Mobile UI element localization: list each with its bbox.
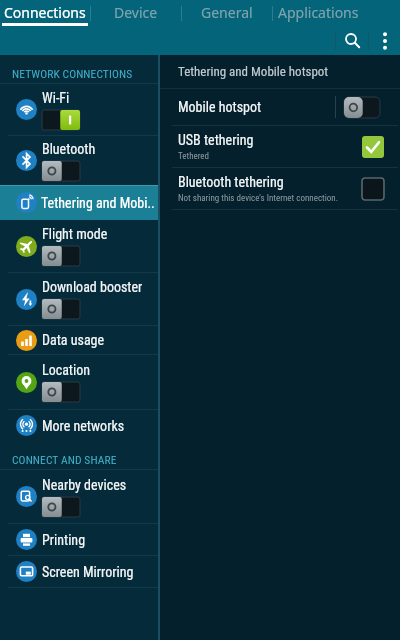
staticText: Screen Mirroring bbox=[42, 564, 134, 580]
button[interactable]: USB tethering bbox=[160, 126, 400, 167]
staticText: Mobile hotspot bbox=[178, 99, 335, 115]
button[interactable]: Applications bbox=[273, 0, 363, 26]
button[interactable] bbox=[369, 26, 400, 55]
staticText: Printing bbox=[42, 532, 86, 548]
button[interactable]: Tethering and Mobi.. bbox=[0, 185, 158, 220]
staticText: Not sharing this device's Internet conne… bbox=[178, 193, 339, 204]
button[interactable]: Mobile hotspot bbox=[160, 89, 400, 125]
button[interactable]: Download booster bbox=[0, 273, 158, 325]
button[interactable]: Flight mode bbox=[0, 220, 158, 272]
staticText: Tethered bbox=[178, 151, 210, 162]
staticText: More networks bbox=[42, 418, 125, 434]
button[interactable]: Bluetooth bbox=[0, 136, 158, 185]
staticText: Wi-Fi bbox=[42, 90, 70, 106]
button[interactable]: Device bbox=[91, 0, 181, 26]
button[interactable]: Nearby devices bbox=[0, 470, 158, 523]
staticText: Download booster bbox=[42, 279, 143, 295]
staticText: Bluetooth bbox=[42, 141, 96, 157]
button[interactable]: Data usage bbox=[0, 326, 158, 354]
staticText: CONNECT AND SHARE bbox=[12, 453, 117, 466]
staticText: Bluetooth tethering bbox=[178, 174, 284, 190]
staticText: Applications bbox=[278, 3, 359, 22]
button[interactable] bbox=[336, 26, 368, 55]
staticText: Device bbox=[114, 3, 158, 22]
button[interactable]: Bluetooth tethering bbox=[160, 168, 400, 209]
button[interactable]: Connections bbox=[0, 0, 90, 26]
staticText: General bbox=[201, 3, 253, 22]
button[interactable]: More networks bbox=[0, 410, 158, 441]
staticText: Location bbox=[42, 362, 91, 378]
staticText: Flight mode bbox=[42, 226, 108, 242]
button[interactable]: Location bbox=[0, 355, 158, 409]
button[interactable]: General bbox=[182, 0, 272, 26]
staticText: Data usage bbox=[42, 332, 105, 348]
staticText: NETWORK CONNECTIONS bbox=[12, 67, 133, 80]
staticText: Tethering and Mobi.. bbox=[41, 195, 155, 211]
staticText: USB tethering bbox=[178, 132, 254, 148]
staticText: Tethering and Mobile hotspot bbox=[178, 64, 329, 79]
button[interactable]: Wi-Fi bbox=[0, 84, 158, 135]
staticText: Nearby devices bbox=[42, 477, 127, 493]
button[interactable]: Printing bbox=[0, 524, 158, 555]
button[interactable]: Screen Mirroring bbox=[0, 556, 158, 587]
staticText: Connections bbox=[4, 3, 86, 22]
